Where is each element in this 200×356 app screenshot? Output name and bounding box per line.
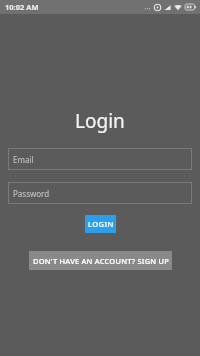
staticText: DON'T HAVE AN ACCOUNT? SIGN UP xyxy=(33,256,169,266)
staticText: Email xyxy=(13,154,34,165)
staticText: 10:02 AM xyxy=(5,2,39,12)
staticText: Login xyxy=(75,108,125,134)
button[interactable]: Password xyxy=(8,182,192,204)
button[interactable]: LOGIN xyxy=(85,215,116,233)
button[interactable]: DON'T HAVE AN ACCOUNT? SIGN UP xyxy=(29,251,172,270)
button[interactable]: Email xyxy=(8,148,192,170)
staticText: LOGIN xyxy=(88,219,114,229)
staticText: Password xyxy=(13,188,50,199)
